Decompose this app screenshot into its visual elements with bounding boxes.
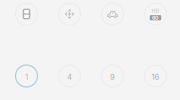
button[interactable]: 9 [101, 65, 123, 87]
staticText: 60 [152, 14, 159, 21]
staticText: 1 [25, 72, 28, 82]
staticText: 16 [151, 72, 159, 82]
staticText: 4 [67, 72, 72, 82]
button[interactable]: Move [58, 3, 80, 25]
button[interactable]: 1 [15, 65, 37, 87]
button[interactable]: 16 [144, 65, 166, 87]
staticText: HD [151, 8, 159, 14]
button[interactable]: Vehicle [101, 3, 123, 25]
button[interactable]: 4 [58, 65, 80, 87]
button[interactable]: Video quality HD 60 [144, 3, 166, 25]
staticText: 9 [110, 72, 115, 82]
button[interactable]: Split view layout [15, 3, 37, 25]
